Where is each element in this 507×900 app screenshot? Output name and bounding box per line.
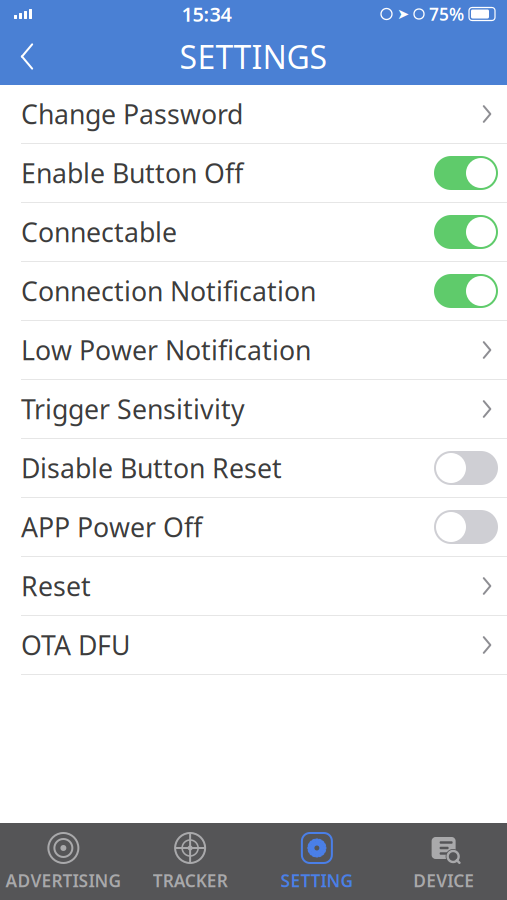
staticText: Low Power Notification [21, 332, 311, 368]
staticText: Change Password [21, 96, 243, 132]
staticText: 75% [429, 2, 464, 25]
button[interactable]: OTA DFU [0, 616, 507, 675]
button[interactable]: Back [0, 28, 54, 85]
staticText: OTA DFU [21, 627, 130, 663]
button[interactable]: Disable Button Reset [0, 439, 507, 498]
staticText: SETTINGS [179, 35, 327, 78]
staticText: ➤ [397, 6, 409, 22]
staticText: DEVICE [413, 869, 474, 892]
staticText: APP Power Off [21, 509, 202, 545]
staticText: Disable Button Reset [21, 450, 282, 486]
staticText: TRACKER [153, 869, 228, 892]
button[interactable]: TRACKER [127, 823, 254, 900]
staticText: Trigger Sensitivity [21, 391, 245, 427]
staticText: SETTING [280, 869, 353, 892]
button[interactable]: DEVICE [380, 823, 507, 900]
button[interactable]: ADVERTISING [0, 823, 127, 900]
button[interactable]: Connectable [0, 203, 507, 262]
button[interactable]: Trigger Sensitivity [0, 380, 507, 439]
button[interactable]: SETTING [253, 823, 380, 900]
button[interactable]: APP Power Off [0, 498, 507, 557]
button[interactable]: Connection Notification [0, 262, 507, 321]
button[interactable]: Change Password [0, 85, 507, 144]
staticText: ADVERTISING [5, 869, 121, 892]
staticText: Connection Notification [21, 273, 316, 309]
staticText: Reset [21, 568, 91, 604]
button[interactable]: Low Power Notification [0, 321, 507, 380]
button[interactable]: Reset [0, 557, 507, 616]
button[interactable]: Enable Button Off [0, 144, 507, 203]
staticText: Enable Button Off [21, 155, 243, 191]
staticText: Connectable [21, 214, 177, 250]
staticText: 15:34 [181, 1, 231, 27]
